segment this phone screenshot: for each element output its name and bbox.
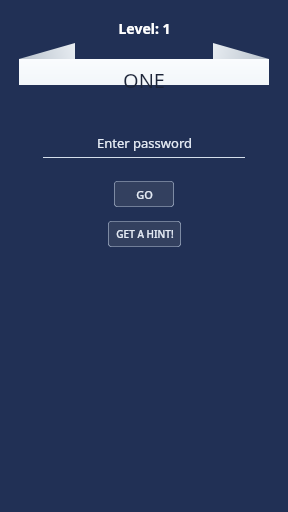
staticText: GO <box>136 187 153 202</box>
button[interactable]: GET A HINT! <box>108 221 181 247</box>
staticText: Level: 1 <box>118 19 171 38</box>
staticText: Enter password <box>97 134 192 152</box>
staticText: ONE <box>123 67 165 94</box>
button[interactable]: GO <box>114 181 174 207</box>
staticText: GET A HINT! <box>116 227 174 241</box>
